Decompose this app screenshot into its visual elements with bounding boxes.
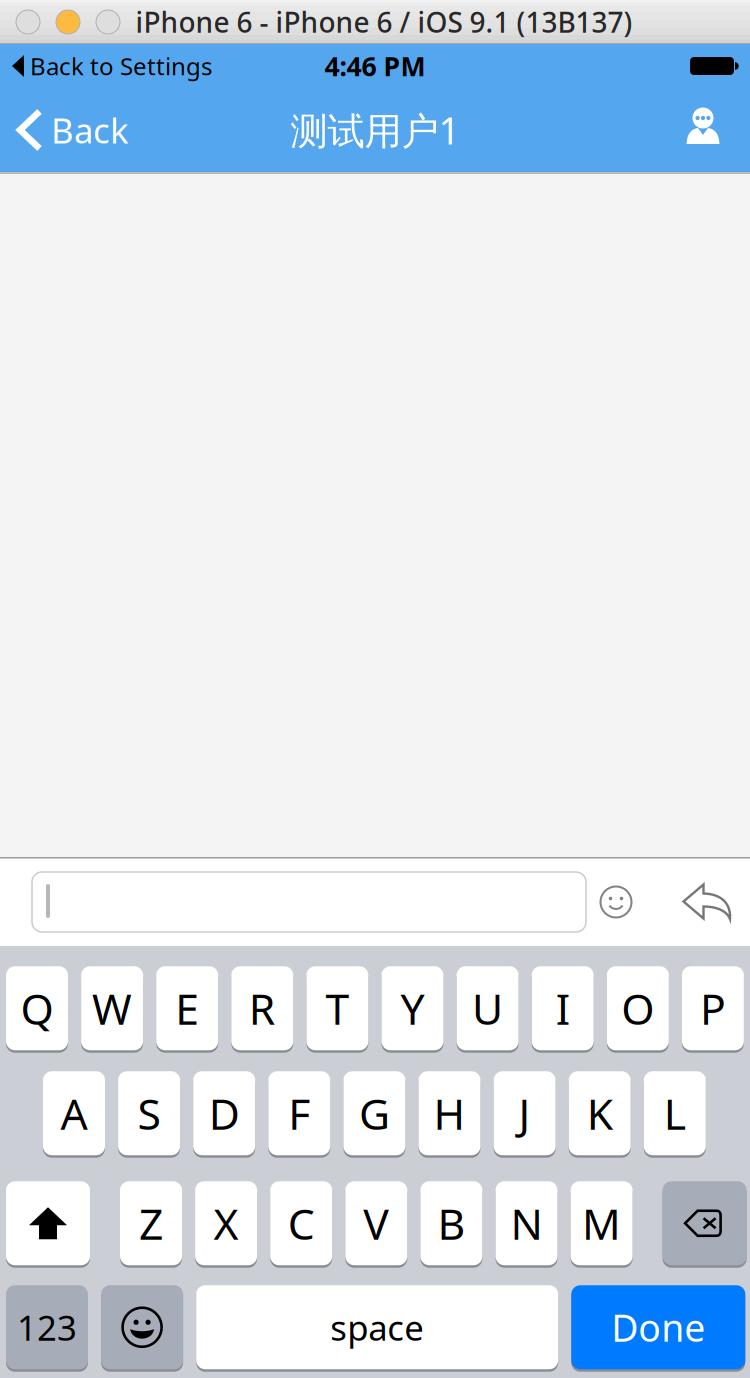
- button[interactable]: Y: [381, 965, 443, 1051]
- staticText: U: [472, 980, 503, 1037]
- staticText: Q: [20, 980, 53, 1037]
- button[interactable]: Back to Settings: [0, 44, 212, 88]
- button[interactable]: E: [156, 965, 218, 1051]
- button[interactable]: T: [306, 965, 368, 1051]
- button[interactable]: D: [193, 1070, 255, 1156]
- button[interactable]: B: [420, 1180, 482, 1266]
- staticText: 测试用户1: [290, 105, 459, 155]
- staticText: A: [60, 1085, 87, 1142]
- button[interactable]: Contact details: [676, 97, 730, 155]
- button[interactable]: U: [457, 965, 519, 1051]
- staticText: L: [664, 1085, 686, 1142]
- button[interactable]: J: [494, 1070, 556, 1156]
- staticText: 123: [17, 1304, 77, 1350]
- button[interactable]: L: [644, 1070, 706, 1156]
- button[interactable]: X: [195, 1180, 257, 1266]
- staticText: iPhone 6 - iPhone 6 / iOS 9.1 (13B137): [135, 3, 632, 41]
- button[interactable]: [101, 1284, 183, 1370]
- button[interactable]: S: [118, 1070, 180, 1156]
- button[interactable]: Q: [6, 965, 68, 1051]
- staticText: S: [138, 1085, 161, 1142]
- staticText: N: [510, 1195, 542, 1252]
- button[interactable]: R: [231, 965, 293, 1051]
- staticText: X: [214, 1195, 239, 1252]
- button[interactable]: I: [532, 965, 594, 1051]
- staticText: V: [363, 1195, 389, 1252]
- staticText: G: [359, 1085, 390, 1142]
- button[interactable]: N: [495, 1180, 557, 1266]
- button[interactable]: [663, 1180, 747, 1266]
- staticText: Done: [611, 1302, 705, 1352]
- staticText: D: [209, 1085, 240, 1142]
- staticText: K: [587, 1085, 613, 1142]
- staticText: M: [582, 1195, 621, 1252]
- button[interactable]: space: [196, 1284, 558, 1370]
- button[interactable]: C: [270, 1180, 332, 1266]
- button[interactable]: Z: [120, 1180, 182, 1266]
- staticText: W: [92, 980, 132, 1037]
- button[interactable]: Back: [0, 88, 170, 172]
- button[interactable]: A: [43, 1070, 105, 1156]
- button[interactable]: F: [268, 1070, 330, 1156]
- button[interactable]: M: [571, 1180, 633, 1266]
- staticText: J: [519, 1085, 531, 1142]
- staticText: C: [288, 1195, 315, 1252]
- button[interactable]: Window control: [56, 10, 80, 34]
- staticText: T: [325, 980, 349, 1037]
- button[interactable]: O: [607, 965, 669, 1051]
- button[interactable]: H: [418, 1070, 480, 1156]
- button[interactable]: G: [343, 1070, 405, 1156]
- staticText: Back to Settings: [30, 50, 212, 82]
- staticText: I: [556, 980, 570, 1037]
- button[interactable]: K: [569, 1070, 631, 1156]
- button[interactable]: Send: [674, 872, 740, 932]
- button[interactable]: 123: [6, 1284, 88, 1370]
- staticText: Y: [400, 980, 424, 1037]
- button[interactable]: W: [81, 965, 143, 1051]
- button[interactable]: Window control: [96, 10, 120, 34]
- staticText: O: [621, 980, 654, 1037]
- staticText: R: [249, 980, 276, 1037]
- staticText: Back: [51, 107, 129, 153]
- staticText: E: [175, 980, 199, 1037]
- staticText: F: [288, 1085, 310, 1142]
- staticText: space: [330, 1304, 424, 1350]
- button[interactable]: Window control: [16, 10, 40, 34]
- button[interactable]: Emoji: [584, 872, 648, 932]
- staticText: B: [437, 1195, 465, 1252]
- button[interactable]: V: [345, 1180, 407, 1266]
- button[interactable]: P: [682, 965, 744, 1051]
- staticText: Z: [139, 1195, 163, 1252]
- staticText: H: [433, 1085, 465, 1142]
- button[interactable]: Done: [571, 1284, 745, 1370]
- staticText: 4:46 PM: [324, 48, 425, 84]
- staticText: P: [700, 980, 726, 1037]
- button[interactable]: [32, 872, 586, 932]
- button[interactable]: [6, 1180, 90, 1266]
